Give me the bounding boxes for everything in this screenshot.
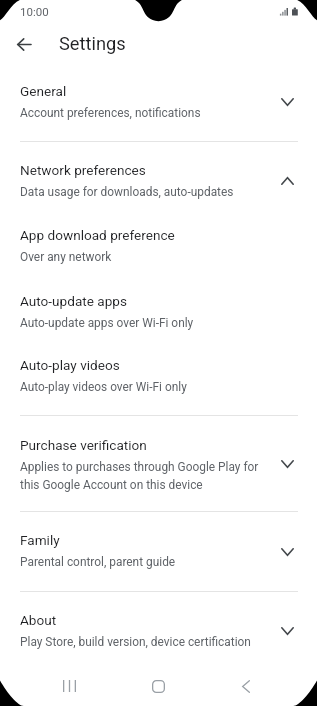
button[interactable]: Home bbox=[141, 669, 175, 703]
staticText: Purchase verification bbox=[20, 437, 147, 453]
staticText: App download preference bbox=[20, 227, 175, 243]
button[interactable]: App download preference bbox=[0, 215, 317, 264]
staticText: General bbox=[20, 83, 67, 99]
button[interactable]: Purchase verification bbox=[0, 425, 317, 496]
staticText: Account preferences, notifications bbox=[20, 106, 260, 120]
button[interactable]: Family bbox=[0, 520, 317, 575]
staticText: Auto-play videos bbox=[20, 357, 120, 373]
staticText: Network preferences bbox=[20, 162, 146, 178]
staticText: Family bbox=[20, 532, 60, 548]
button[interactable]: Recent apps bbox=[52, 669, 86, 703]
button[interactable]: Auto-update apps bbox=[0, 281, 317, 330]
staticText: About bbox=[20, 612, 57, 628]
staticText: Auto-update apps bbox=[20, 293, 128, 309]
staticText: Play Store, build version, device certif… bbox=[20, 635, 260, 649]
staticText: Auto-update apps over Wi-Fi only bbox=[20, 316, 260, 330]
staticText: Applies to purchases through Google Play… bbox=[20, 460, 260, 492]
staticText: Auto-play videos over Wi-Fi only bbox=[20, 380, 260, 394]
button[interactable]: General bbox=[0, 71, 317, 125]
staticText: Parental control, parent guide bbox=[20, 555, 260, 569]
button[interactable]: Back bbox=[229, 669, 263, 703]
staticText: Settings bbox=[59, 33, 126, 54]
button[interactable]: About bbox=[0, 600, 317, 654]
staticText: Data usage for downloads, auto-updates bbox=[20, 185, 260, 199]
staticText: 10:00 bbox=[20, 5, 49, 18]
button[interactable]: Auto-play videos bbox=[0, 345, 317, 399]
button[interactable]: Network preferences bbox=[0, 150, 317, 199]
button[interactable]: Navigate up bbox=[10, 31, 37, 58]
staticText: Over any network bbox=[20, 250, 260, 264]
